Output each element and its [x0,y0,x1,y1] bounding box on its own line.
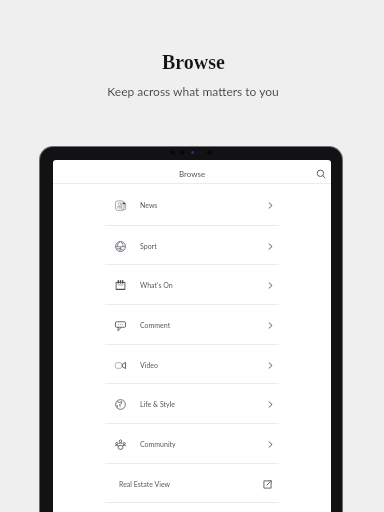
button[interactable]: Video [53,345,331,385]
button[interactable]: Sport [53,226,331,266]
staticText: Real Estate View [119,480,171,488]
button[interactable]: News [53,184,331,226]
staticText: Browse [179,169,206,179]
staticText: News [140,201,158,209]
staticText: Video [140,361,159,369]
staticText: Sport [140,242,157,250]
button[interactable]: What's On [53,265,331,305]
staticText: Life & Style [140,400,175,408]
staticText: Browse [162,51,225,73]
button[interactable]: Comment [53,305,331,345]
button[interactable]: Community [53,424,331,464]
button[interactable]: Real Estate View [53,464,331,504]
staticText: Comment [140,321,171,329]
staticText: Keep across what matters to you [107,84,279,98]
button[interactable]: Search [314,167,328,181]
staticText: Community [140,440,176,448]
button[interactable]: Life & Style [53,384,331,424]
staticText: What's On [140,281,173,289]
